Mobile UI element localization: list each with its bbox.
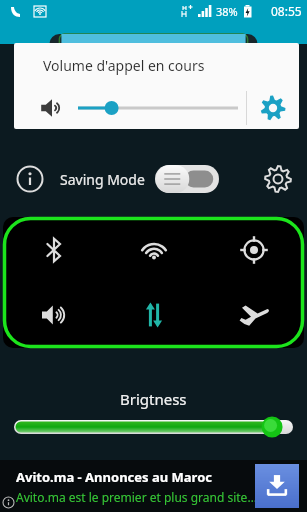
staticText: Avito.ma - Annonces au Maroc (16, 468, 213, 486)
staticText: Avito.ma est le premier et plus grand si… (16, 489, 257, 505)
button[interactable]: Install (255, 464, 299, 508)
button[interactable]: Airplane mode (204, 282, 304, 348)
button[interactable]: Location (204, 217, 304, 282)
staticText: Volume d'appel en cours (43, 56, 205, 75)
button[interactable]: Information (0, 151, 60, 207)
button[interactable]: Call volume slider (78, 94, 238, 122)
button[interactable] (155, 164, 219, 194)
button[interactable]: Mobile data (104, 282, 204, 348)
button[interactable]: Bluetooth (3, 217, 104, 282)
button[interactable]: Brightness slider (14, 416, 293, 438)
staticText: Brigtness (120, 389, 187, 409)
staticText: 38% (216, 4, 238, 19)
button[interactable]: Sound settings (247, 87, 299, 129)
staticText: Saving Mode (60, 170, 145, 189)
button[interactable]: Settings (249, 151, 307, 207)
button[interactable]: Wi-Fi (104, 217, 204, 282)
button[interactable]: Sound (3, 282, 104, 348)
staticText: 08:55 (271, 3, 302, 19)
